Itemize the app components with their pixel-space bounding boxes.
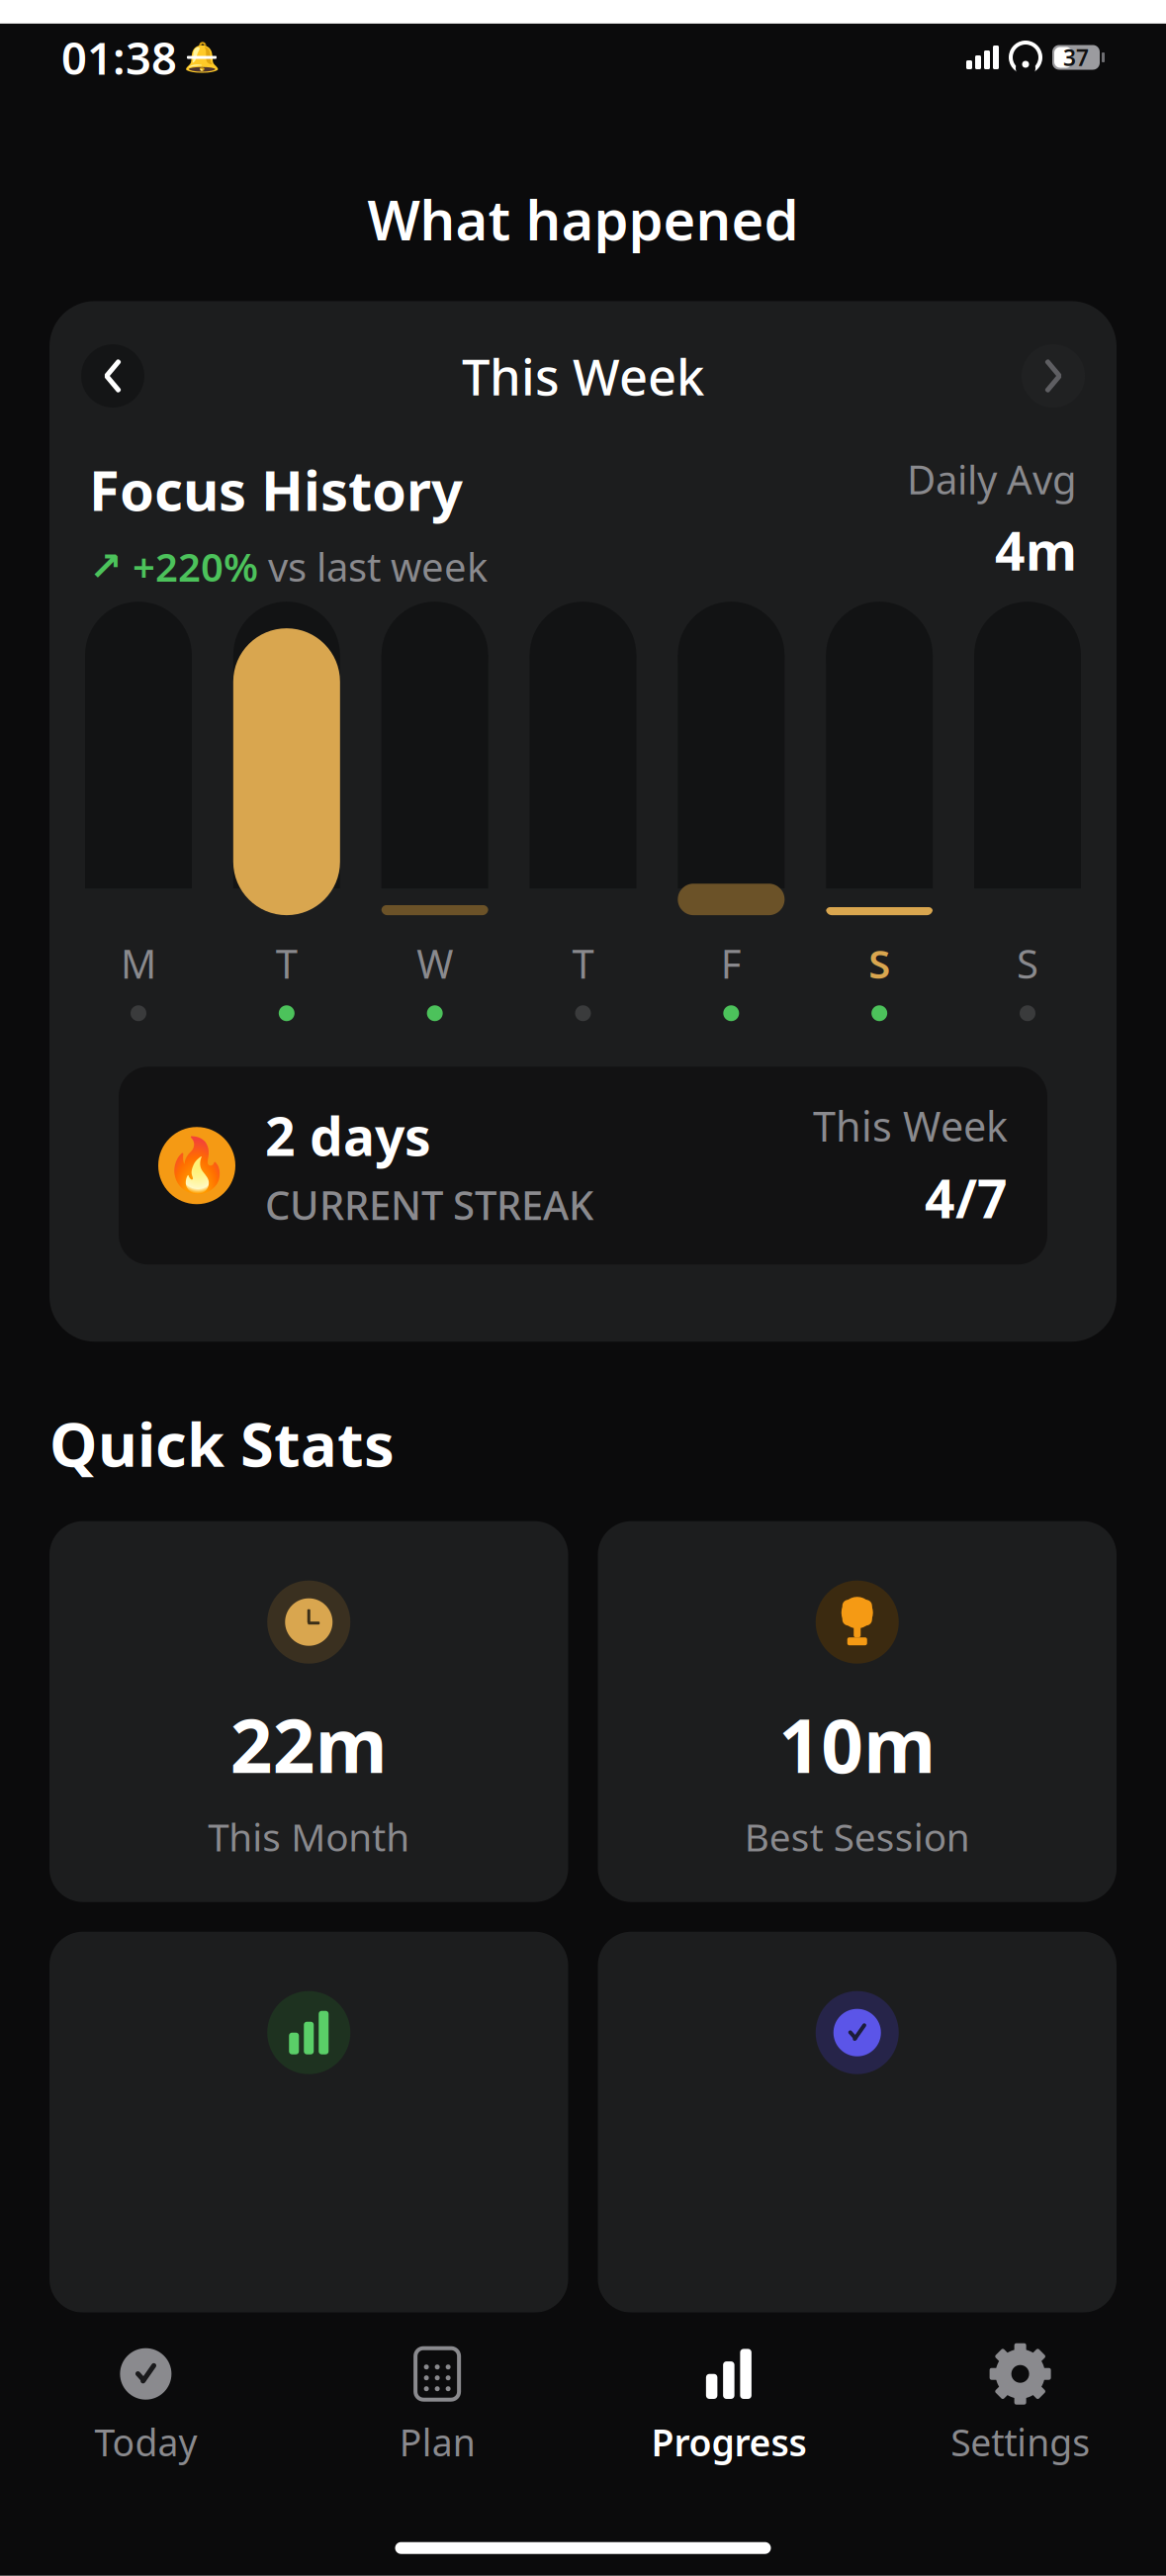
staticText: Plan <box>399 2417 475 2466</box>
staticText: ↗ <box>89 544 123 589</box>
staticText: CURRENT STREAK <box>265 1178 593 1231</box>
staticText: T <box>572 937 594 989</box>
staticText: Settings <box>951 2417 1090 2466</box>
button[interactable]: Settings <box>874 2338 1166 2474</box>
staticText: Progress <box>651 2417 806 2466</box>
button[interactable]: Today <box>0 2338 292 2474</box>
staticText: M <box>121 937 156 989</box>
staticText: This Week <box>813 1098 1008 1153</box>
staticText: Focus History <box>89 453 463 526</box>
staticText: W <box>417 937 453 989</box>
staticText: 22m <box>230 1695 387 1793</box>
staticText: S <box>869 937 890 989</box>
button[interactable]: Previous week <box>81 344 144 408</box>
button[interactable]: 10m <box>598 1521 1117 1902</box>
staticText: T <box>276 937 297 989</box>
staticText: vs last week <box>268 540 488 593</box>
staticText: 4/7 <box>925 1163 1008 1233</box>
button[interactable]: 🔥 <box>119 1067 1047 1265</box>
button[interactable]: Plan <box>292 2338 583 2474</box>
staticText: 2 days <box>265 1100 431 1170</box>
button[interactable]: 22m <box>49 1521 568 1902</box>
staticText: Daily Avg <box>907 453 1077 505</box>
button[interactable] <box>49 1932 568 2313</box>
staticText: Best Session <box>744 1811 970 1862</box>
staticText: This Week <box>462 343 704 409</box>
button[interactable]: Next week <box>1022 344 1085 408</box>
staticText: +220% <box>133 540 258 593</box>
staticText: This Month <box>208 1811 410 1862</box>
staticText: 4m <box>995 515 1077 585</box>
staticText: S <box>1017 937 1038 989</box>
staticText: Quick Stats <box>49 1403 395 1484</box>
staticText: 01:38 <box>61 28 177 87</box>
staticText: 10m <box>779 1695 936 1793</box>
staticText: 37 <box>1063 42 1089 72</box>
staticText: 🔔 <box>183 41 220 74</box>
staticText: F <box>721 937 742 989</box>
staticText: 🔥 <box>164 1135 229 1196</box>
button[interactable] <box>598 1932 1117 2313</box>
staticText: Today <box>94 2417 197 2466</box>
staticText: What happened <box>367 182 799 256</box>
button[interactable]: Progress <box>583 2338 875 2474</box>
